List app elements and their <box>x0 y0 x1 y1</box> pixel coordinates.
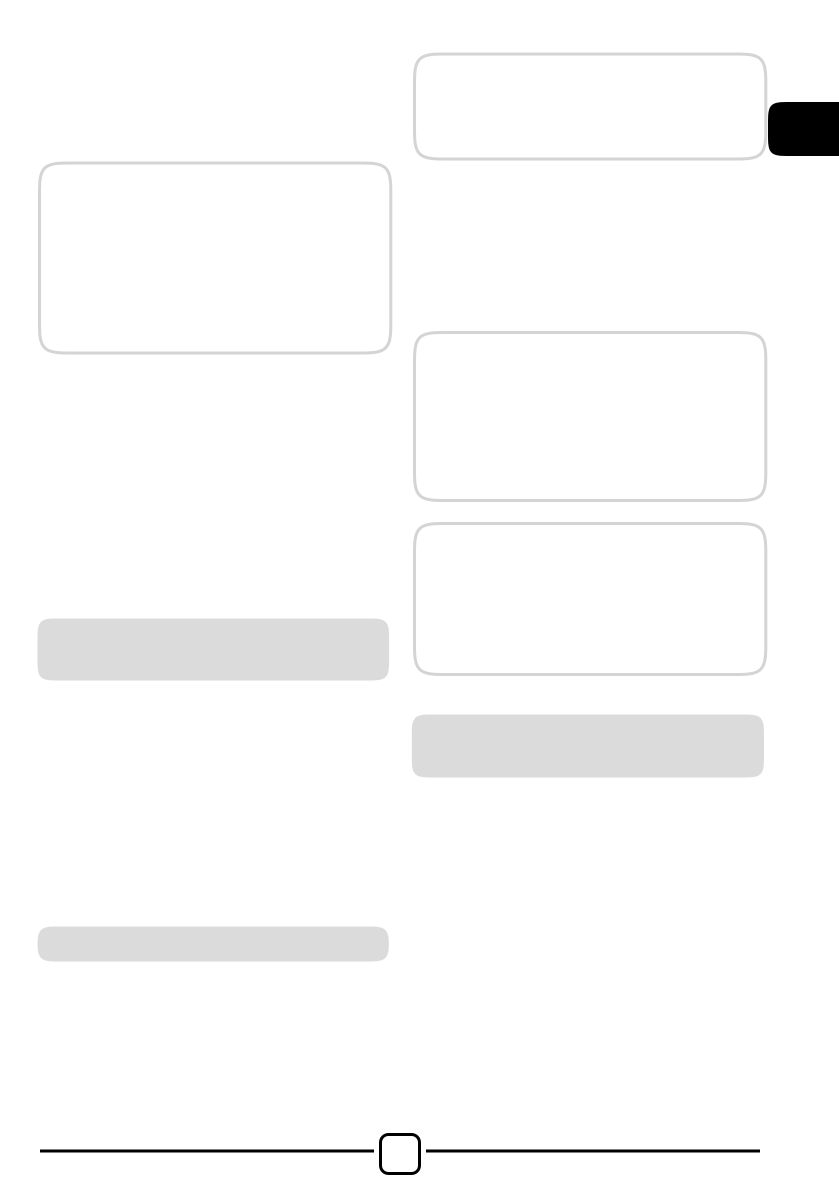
button[interactable]: Selected message <box>768 102 839 156</box>
button[interactable]: Attachment <box>37 926 389 961</box>
button[interactable]: Stop <box>380 1134 419 1173</box>
button[interactable]: Message <box>414 54 766 159</box>
button[interactable]: Message <box>414 523 766 674</box>
button[interactable]: Attachment <box>37 618 389 680</box>
button[interactable]: Message <box>39 163 391 353</box>
button[interactable]: Message <box>414 332 766 500</box>
button[interactable]: Attachment <box>412 714 764 777</box>
